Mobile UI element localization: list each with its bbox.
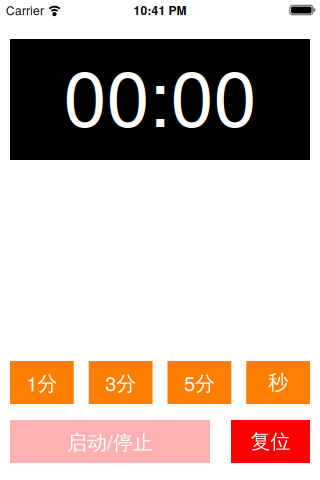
button[interactable]: 1分 xyxy=(10,361,74,404)
staticText: 00:00 xyxy=(63,38,256,149)
staticText: 复位 xyxy=(250,429,290,454)
staticText: 启动/停止 xyxy=(67,427,153,456)
button[interactable]: 复位 xyxy=(231,420,310,463)
button[interactable]: 启动/停止 xyxy=(10,420,210,463)
button[interactable]: 5分 xyxy=(167,361,231,404)
button[interactable]: 秒 xyxy=(246,361,310,404)
staticText: 秒 xyxy=(268,370,288,395)
staticText: 5分 xyxy=(184,368,215,397)
staticText: Carrier xyxy=(6,1,44,19)
staticText: 1分 xyxy=(26,368,57,397)
staticText: 10:41 PM xyxy=(133,1,186,19)
staticText: 3分 xyxy=(105,368,136,397)
button[interactable]: 3分 xyxy=(89,361,153,404)
